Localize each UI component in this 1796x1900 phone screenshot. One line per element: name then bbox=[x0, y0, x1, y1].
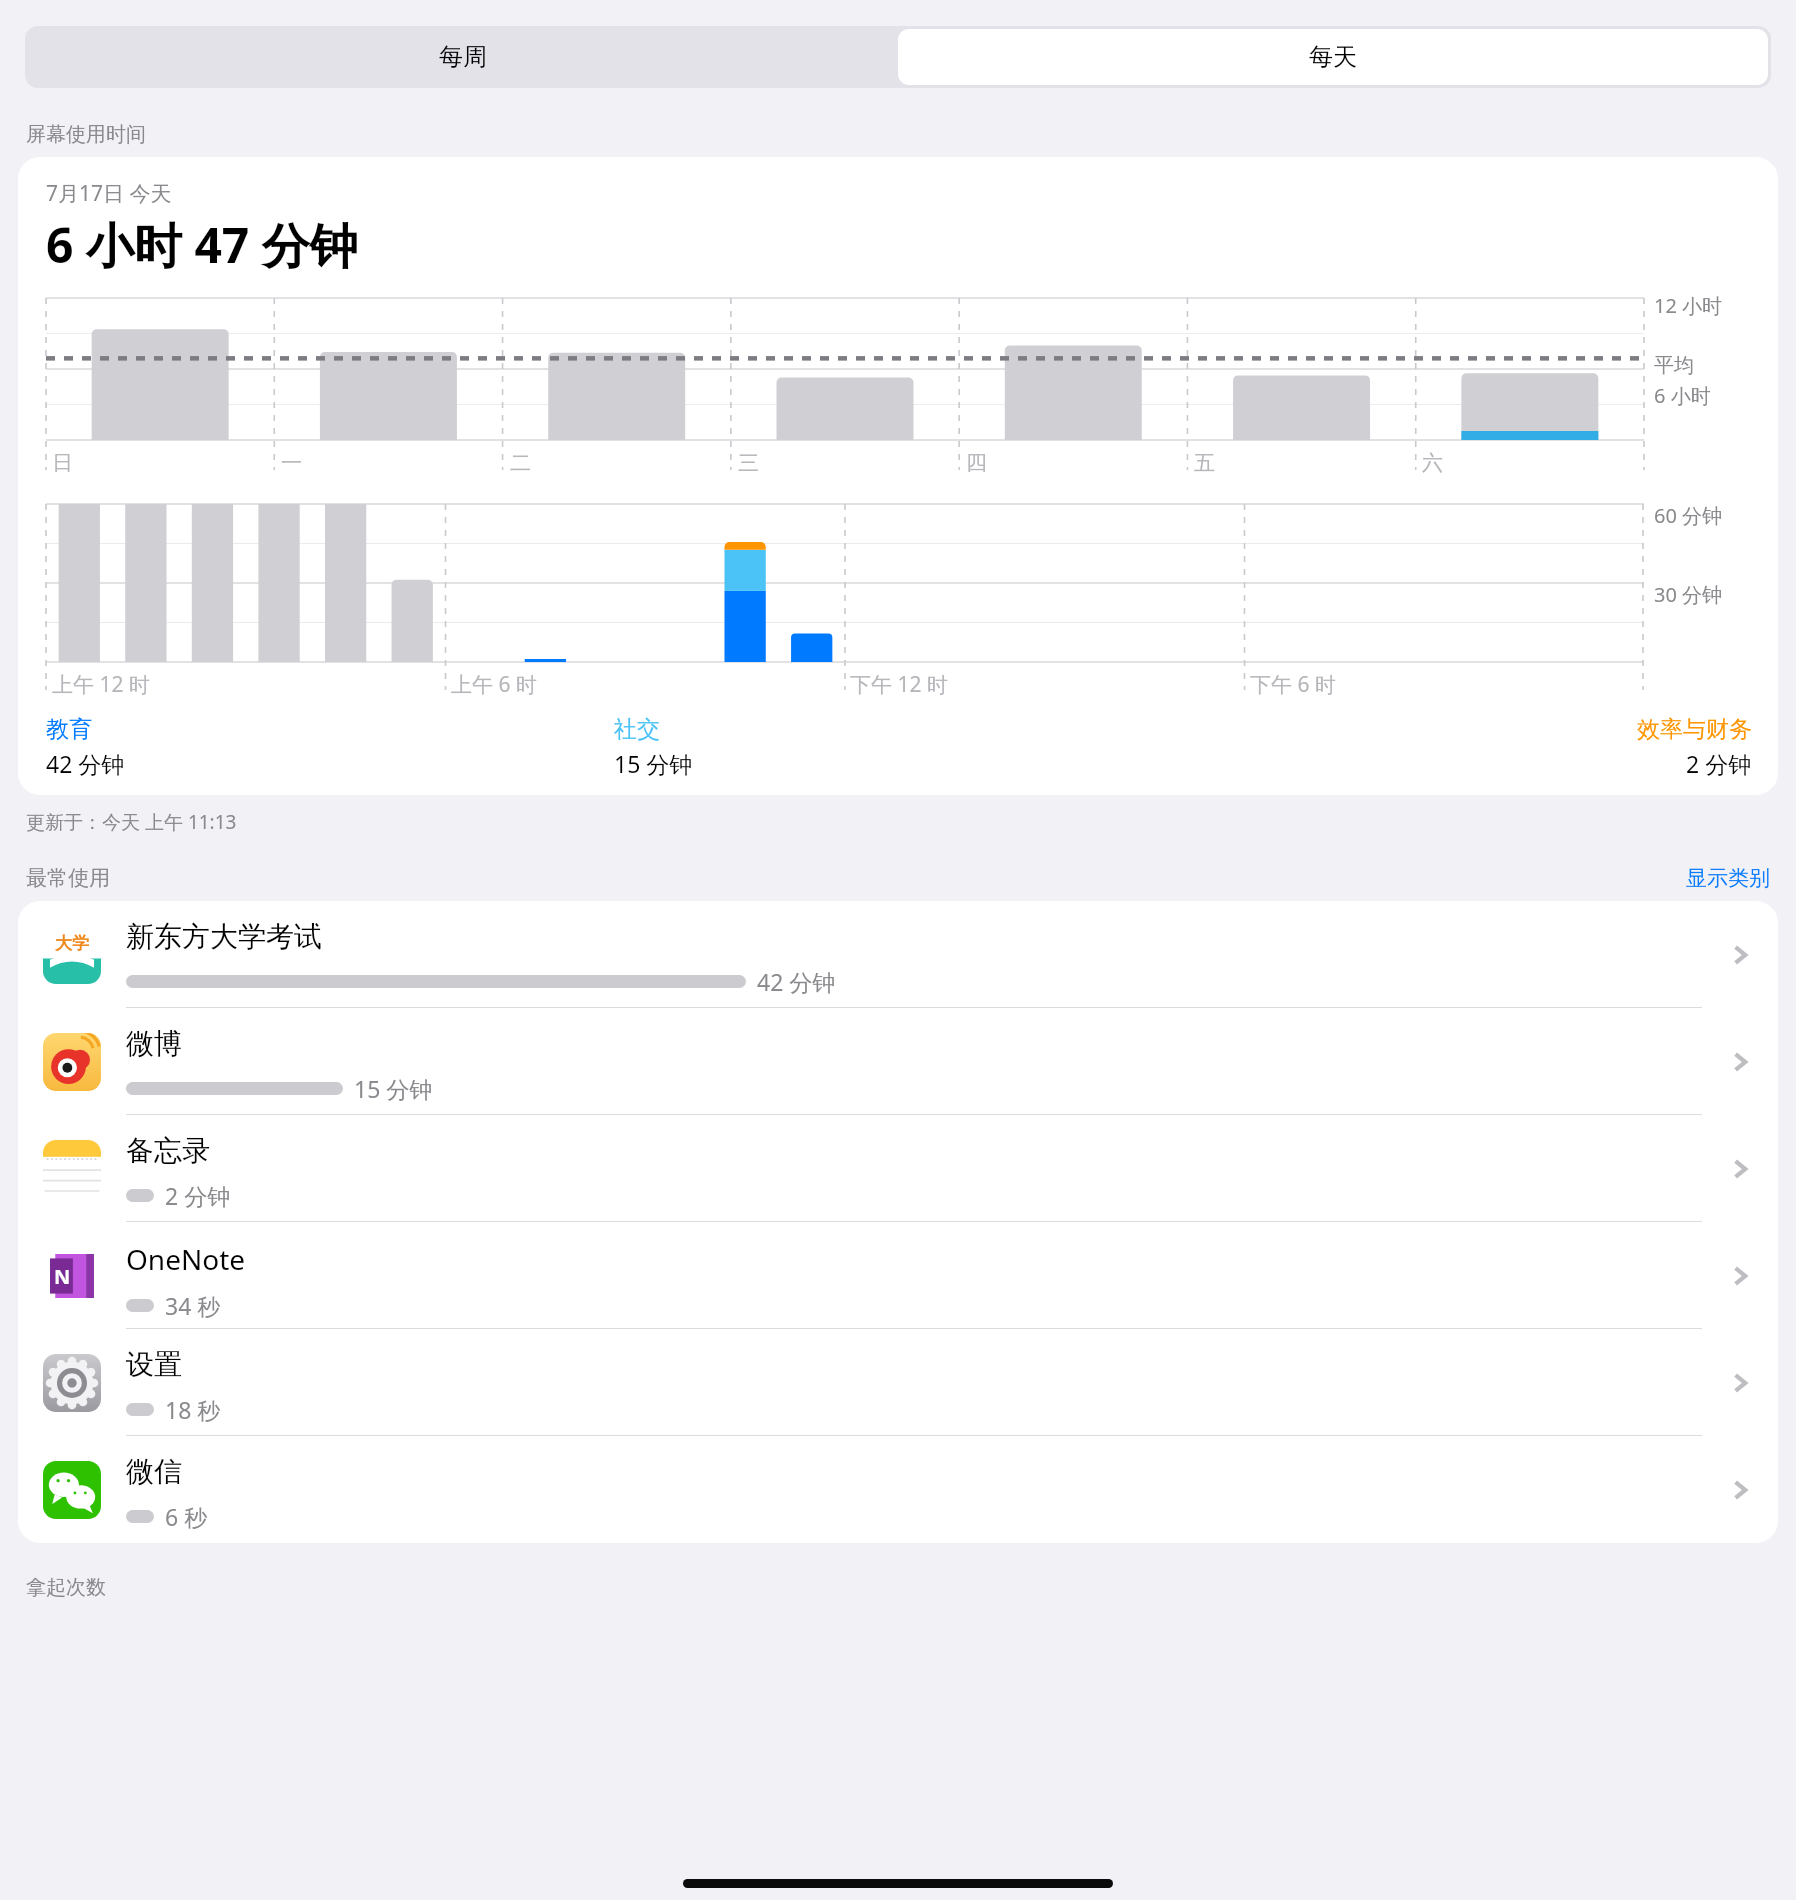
button[interactable]: 社交 bbox=[614, 715, 1183, 779]
staticText: 30 分钟 bbox=[1654, 581, 1723, 608]
staticText: 6 小时 47 分钟 bbox=[46, 212, 358, 278]
staticText: 一 bbox=[281, 450, 302, 476]
button[interactable]: 设置 bbox=[18, 1329, 1778, 1436]
staticText: 60 分钟 bbox=[1654, 502, 1723, 529]
staticText: 2 分钟 bbox=[165, 1180, 231, 1211]
staticText: 6 秒 bbox=[165, 1501, 208, 1532]
staticText: 15 分钟 bbox=[354, 1073, 433, 1104]
staticText: 7月17日 今天 bbox=[46, 179, 172, 208]
staticText: 教育 bbox=[46, 715, 92, 744]
staticText: 大学 bbox=[55, 933, 89, 954]
button[interactable]: 大学 bbox=[18, 901, 1778, 1008]
staticText: 平均 bbox=[1654, 353, 1694, 378]
button[interactable]: 微博 bbox=[18, 1008, 1778, 1115]
staticText: 34 秒 bbox=[165, 1290, 221, 1321]
staticText: N bbox=[54, 1263, 71, 1290]
staticText: 15 分钟 bbox=[614, 748, 693, 779]
staticText: 四 bbox=[966, 450, 987, 476]
staticText: 最常使用 bbox=[26, 865, 110, 891]
staticText: 日 bbox=[52, 450, 73, 476]
button[interactable]: 每周 bbox=[28, 29, 898, 85]
staticText: 每天 bbox=[1309, 42, 1357, 72]
staticText: 2 分钟 bbox=[1686, 748, 1752, 779]
staticText: OneNote bbox=[126, 1240, 246, 1278]
staticText: 12 小时 bbox=[1654, 292, 1723, 319]
staticText: 二 bbox=[510, 450, 531, 476]
staticText: 上午 12 时 bbox=[52, 670, 150, 699]
staticText: 每周 bbox=[439, 42, 487, 72]
button[interactable]: 显示类别 bbox=[1686, 865, 1770, 891]
staticText: 18 秒 bbox=[165, 1394, 221, 1425]
staticText: 显示类别 bbox=[1686, 865, 1770, 891]
staticText: 上午 6 时 bbox=[451, 670, 537, 699]
staticText: 微信 bbox=[126, 1454, 182, 1489]
button[interactable]: 教育 bbox=[46, 715, 614, 779]
staticText: 社交 bbox=[614, 715, 660, 744]
staticText: 新东方大学考试 bbox=[126, 919, 322, 954]
staticText: 微博 bbox=[126, 1026, 182, 1061]
button[interactable]: N bbox=[18, 1222, 1778, 1329]
button[interactable]: 备忘录 bbox=[18, 1115, 1778, 1222]
button[interactable]: 微信 bbox=[18, 1436, 1778, 1543]
button[interactable]: 效率与财务 bbox=[1183, 715, 1752, 779]
button[interactable]: 每天 bbox=[898, 29, 1768, 85]
staticText: 屏幕使用时间 bbox=[26, 122, 146, 147]
staticText: 更新于：今天 上午 11:13 bbox=[26, 809, 237, 835]
button[interactable]: 7月17日 今天 bbox=[18, 157, 1778, 795]
staticText: 六 bbox=[1422, 450, 1443, 476]
staticText: 五 bbox=[1194, 450, 1215, 476]
staticText: 下午 12 时 bbox=[850, 670, 948, 699]
staticText: 设置 bbox=[126, 1347, 182, 1382]
staticText: 备忘录 bbox=[126, 1133, 210, 1168]
staticText: 拿起次数 bbox=[26, 1575, 106, 1600]
staticText: 下午 6 时 bbox=[1250, 670, 1336, 699]
staticText: 42 分钟 bbox=[46, 748, 125, 779]
staticText: 三 bbox=[738, 450, 759, 476]
staticText: 6 小时 bbox=[1654, 382, 1711, 409]
staticText: 效率与财务 bbox=[1637, 715, 1752, 744]
staticText: 42 分钟 bbox=[757, 966, 836, 997]
